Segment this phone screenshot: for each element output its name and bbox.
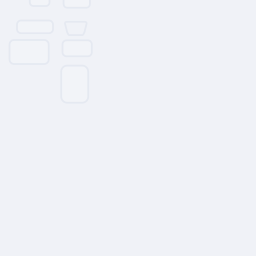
button[interactable]: Actions (64, 0, 90, 8)
button[interactable]: Status (30, 0, 49, 6)
button[interactable]: Summary card (9, 40, 49, 64)
button[interactable]: Filter (64, 22, 87, 35)
button[interactable]: Search (17, 20, 53, 33)
button[interactable]: Detail (62, 40, 92, 56)
button[interactable]: Preview (61, 66, 88, 103)
